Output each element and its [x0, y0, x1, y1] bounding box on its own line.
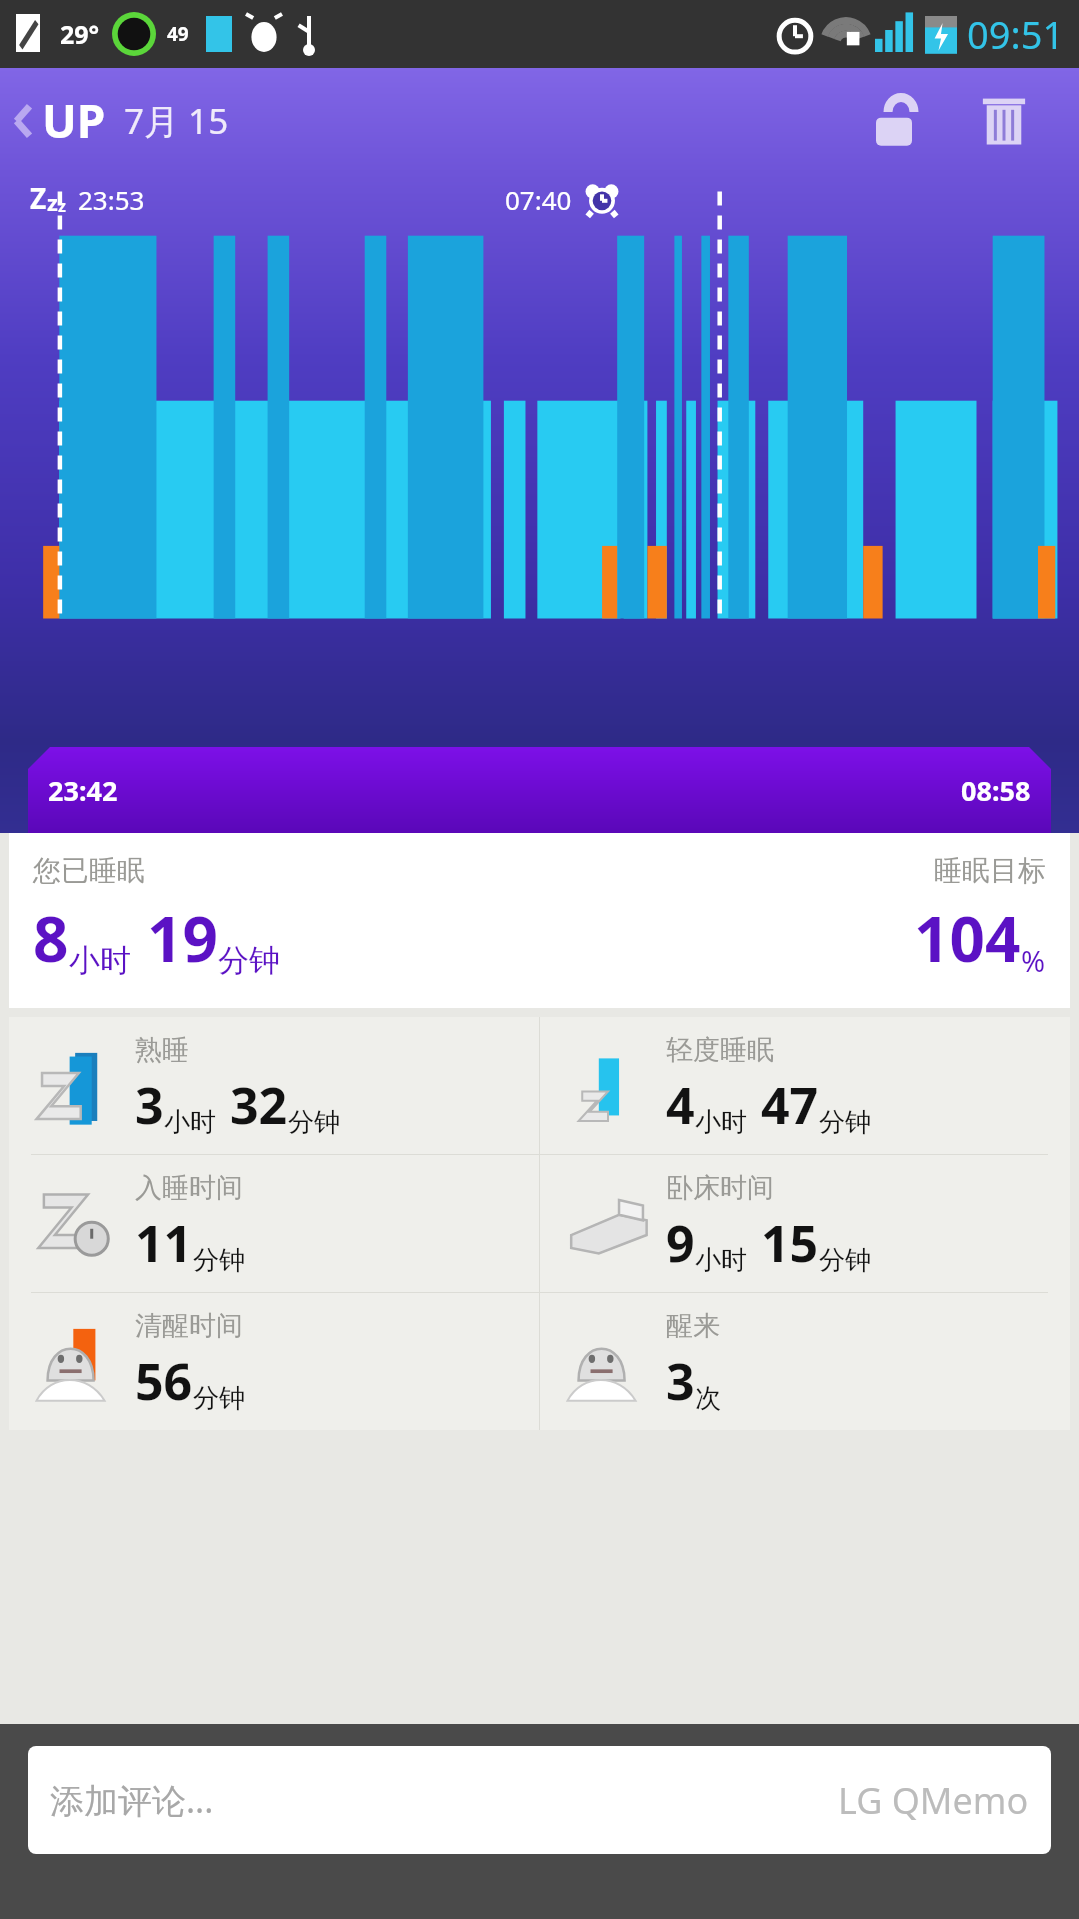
staticText: 轻度睡眠	[666, 1033, 774, 1067]
staticText: 小时	[164, 1106, 216, 1139]
staticText: 分钟	[193, 1382, 245, 1415]
staticText: 7月 15	[124, 97, 229, 145]
button[interactable]: 您已睡眠	[9, 833, 1070, 1008]
other: Back	[10, 98, 36, 144]
staticText: 3	[135, 1071, 164, 1139]
staticText: 小时	[695, 1106, 747, 1139]
staticText: 分钟	[218, 941, 280, 980]
button[interactable]: 轻度睡眠	[540, 1017, 1070, 1154]
staticText: 次	[695, 1382, 721, 1415]
button[interactable]: 添加评论...	[28, 1746, 1051, 1854]
staticText: 睡眠目标	[934, 853, 1046, 888]
staticText: 104	[914, 896, 1021, 980]
button[interactable]: Delete	[949, 68, 1059, 173]
staticText: LG QMemo	[838, 1776, 1029, 1825]
staticText: 小时	[695, 1244, 747, 1277]
staticText: z	[58, 195, 66, 217]
staticText: 09:51	[967, 8, 1065, 60]
staticText: 49	[167, 21, 189, 47]
staticText: 15	[761, 1209, 819, 1277]
staticText: 08:58	[961, 772, 1031, 809]
button[interactable]: Back	[0, 89, 237, 152]
staticText: 8	[33, 896, 69, 980]
staticText: 清醒时间	[135, 1309, 243, 1343]
button[interactable]: Unlock	[839, 68, 949, 173]
staticText: 您已睡眠	[33, 853, 145, 888]
staticText: 29°	[60, 17, 100, 51]
staticText: UP	[42, 89, 106, 152]
staticText: 07:40	[505, 182, 572, 217]
staticText: 醒来	[666, 1309, 720, 1343]
staticText: 47	[761, 1071, 819, 1139]
staticText: 分钟	[288, 1106, 340, 1139]
staticText: 19	[147, 896, 218, 980]
button[interactable]: 清醒时间	[9, 1293, 539, 1430]
staticText: 23:53	[78, 182, 145, 217]
button[interactable]: 卧床时间	[540, 1155, 1070, 1292]
button[interactable]: 入睡时间	[9, 1155, 539, 1292]
staticText: 11	[135, 1209, 193, 1277]
staticText: 分钟	[819, 1106, 871, 1139]
staticText: 32	[230, 1071, 288, 1139]
staticText: 3	[666, 1347, 695, 1415]
staticText: %	[1021, 941, 1046, 980]
staticText: 23:42	[48, 772, 118, 809]
staticText: 分钟	[819, 1244, 871, 1277]
staticText: Z	[30, 179, 47, 217]
staticText: z	[47, 187, 58, 217]
staticText: 56	[135, 1347, 193, 1415]
staticText: 卧床时间	[666, 1171, 774, 1205]
staticText: 分钟	[193, 1244, 245, 1277]
staticText: 熟睡	[135, 1033, 189, 1067]
staticText: 4	[666, 1071, 695, 1139]
button[interactable]: 醒来	[540, 1293, 1070, 1430]
staticText: 9	[666, 1209, 695, 1277]
staticText: 入睡时间	[135, 1171, 243, 1205]
staticText: 添加评论...	[50, 1777, 214, 1823]
staticText: 小时	[69, 941, 131, 980]
button[interactable]: 熟睡	[9, 1017, 539, 1154]
